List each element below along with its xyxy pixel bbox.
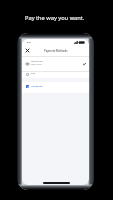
staticText: Add new card — [31, 85, 43, 87]
button[interactable]: Close — [23, 46, 32, 55]
staticText: Payment Methods — [44, 49, 68, 53]
staticText: Cash — [31, 72, 36, 74]
staticText: 9:41 — [27, 41, 31, 44]
staticText: Personal card — [31, 60, 43, 62]
button[interactable]: Cash — [22, 72, 89, 78]
button[interactable]: Add new card — [22, 82, 89, 93]
button[interactable]: Personal card — [22, 57, 89, 71]
staticText: HSBC **1234 — [31, 63, 42, 65]
staticText: Pay the way you want. — [25, 14, 85, 22]
